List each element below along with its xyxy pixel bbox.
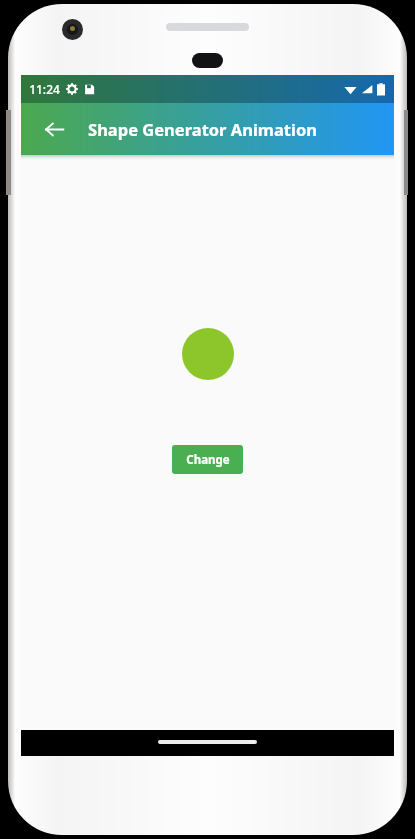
staticText: 11:24: [29, 81, 60, 97]
button[interactable]: Back: [34, 109, 74, 149]
staticText: Change: [186, 452, 230, 468]
button[interactable]: Change: [172, 445, 243, 474]
button[interactable]: Home: [158, 740, 257, 744]
staticText: Shape Generator Animation: [88, 118, 317, 140]
